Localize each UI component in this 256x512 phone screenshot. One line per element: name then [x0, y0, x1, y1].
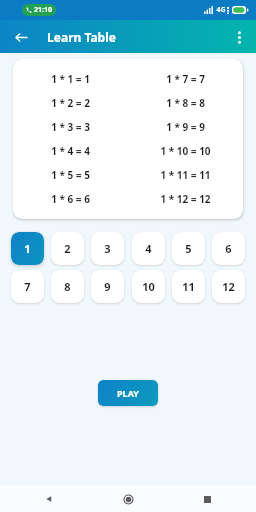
button[interactable]: Recent apps	[196, 488, 218, 510]
button[interactable]: 2	[51, 232, 84, 265]
button[interactable]: 3	[91, 232, 124, 265]
staticText: 1 * 11 = 11	[160, 168, 211, 182]
button[interactable]: 4	[132, 232, 165, 265]
button[interactable]: Home	[117, 488, 139, 510]
staticText: 1 * 3 = 3	[51, 120, 90, 134]
button[interactable]: 6	[212, 232, 245, 265]
staticText: 1 * 8 = 8	[166, 96, 205, 110]
button[interactable]: 1	[11, 232, 44, 265]
button[interactable]: 11	[172, 270, 205, 303]
button[interactable]: 5	[172, 232, 205, 265]
staticText: Learn Table	[47, 29, 116, 45]
staticText: 1 * 7 = 7	[166, 72, 205, 86]
staticText: 3	[104, 241, 111, 256]
staticText: 1 * 5 = 5	[51, 168, 90, 182]
staticText: 1 * 6 = 6	[51, 192, 90, 206]
staticText: PLAY	[117, 387, 139, 399]
staticText: 12	[222, 279, 235, 294]
staticText: 4	[145, 241, 152, 256]
staticText: 10	[142, 279, 155, 294]
button[interactable]: More options	[226, 24, 252, 50]
button[interactable]: 9	[91, 270, 124, 303]
staticText: 11	[182, 279, 195, 294]
button[interactable]: Back	[38, 488, 60, 510]
staticText: 21:10	[34, 5, 52, 15]
staticText: 1 * 1 = 1	[51, 72, 90, 86]
button[interactable]: 12	[212, 270, 245, 303]
staticText: 8	[64, 279, 71, 294]
staticText: 7	[24, 279, 31, 294]
staticText: 2	[64, 241, 71, 256]
staticText: 1 * 2 = 2	[51, 96, 90, 110]
staticText: 1	[24, 241, 31, 256]
button[interactable]: PLAY	[98, 380, 158, 406]
staticText: 1 * 10 = 10	[160, 144, 211, 158]
staticText: 1 * 12 = 12	[160, 192, 211, 206]
staticText: 1 * 9 = 9	[166, 120, 205, 134]
staticText: 4G	[216, 5, 226, 15]
button[interactable]: 8	[51, 270, 84, 303]
staticText: 1 * 4 = 4	[51, 144, 90, 158]
staticText: 6	[225, 241, 232, 256]
staticText: 9	[104, 279, 111, 294]
staticText: 5	[185, 241, 192, 256]
button[interactable]: 10	[132, 270, 165, 303]
button[interactable]: 7	[11, 270, 44, 303]
button[interactable]: Back	[8, 24, 34, 50]
